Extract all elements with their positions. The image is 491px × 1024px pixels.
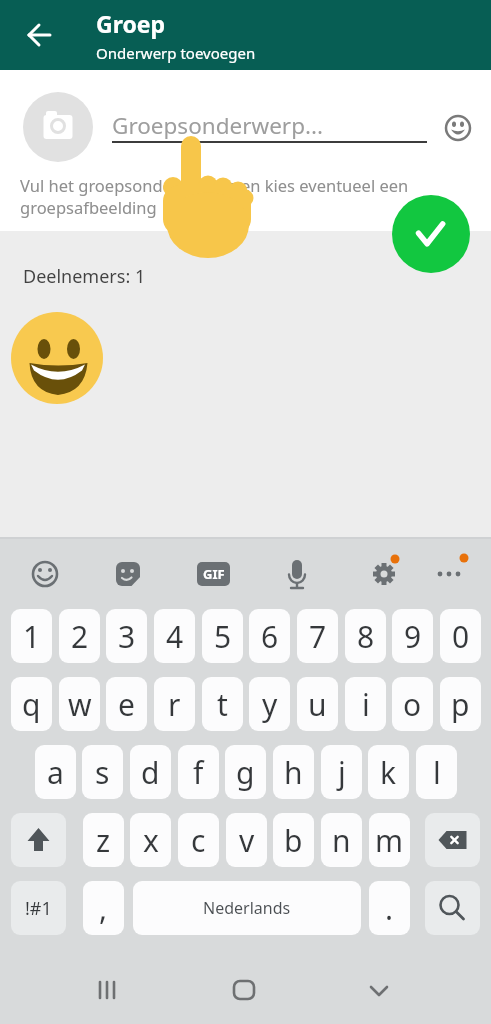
button[interactable] <box>443 113 473 143</box>
button[interactable] <box>11 813 66 867</box>
staticText: q <box>22 684 41 725</box>
staticText: s <box>95 752 110 793</box>
staticText: o <box>403 684 422 725</box>
staticText: n <box>332 820 351 861</box>
staticText: g <box>236 752 255 793</box>
button[interactable]: j <box>321 745 362 799</box>
staticText: . <box>385 888 394 929</box>
staticText: Groepsonderwerp... <box>112 110 324 141</box>
staticText: 1 <box>23 616 41 657</box>
staticText: z <box>96 820 111 861</box>
staticText: b <box>284 820 303 861</box>
staticText: w <box>68 684 92 725</box>
staticText: y <box>262 684 278 725</box>
staticText: 8 <box>357 616 375 657</box>
staticText: t <box>217 684 228 725</box>
button[interactable]: l <box>416 745 457 799</box>
button[interactable]: q <box>11 677 52 731</box>
button[interactable]: c <box>178 813 219 867</box>
button[interactable]: a <box>35 745 76 799</box>
staticText: Vul het groepsonderwerp in en kies event… <box>20 174 409 196</box>
button[interactable]: e <box>106 677 147 731</box>
button[interactable]: , <box>83 881 124 935</box>
staticText: f <box>193 752 204 793</box>
staticText: e <box>118 684 135 725</box>
button[interactable]: 4 <box>154 609 195 663</box>
button[interactable]: g <box>225 745 266 799</box>
staticText: d <box>141 752 160 793</box>
button[interactable]: 6 <box>249 609 290 663</box>
button[interactable]: k <box>368 745 409 799</box>
button[interactable] <box>425 881 480 935</box>
button[interactable]: t <box>202 677 243 731</box>
staticText: 3 <box>118 616 136 657</box>
staticText: groepsafbeelding <box>20 196 157 218</box>
button[interactable]: v <box>226 813 267 867</box>
button[interactable]: y <box>249 677 290 731</box>
staticText: a <box>47 752 64 793</box>
button[interactable]: s <box>82 745 123 799</box>
staticText: 2 <box>71 616 89 657</box>
staticText: 0 <box>452 616 470 657</box>
staticText: Nederlands <box>203 897 291 919</box>
button[interactable]: d <box>130 745 171 799</box>
button[interactable]: 9 <box>392 609 433 663</box>
button[interactable]: . <box>369 881 410 935</box>
staticText: 6 <box>261 616 279 657</box>
button[interactable]: Nederlands <box>133 881 361 935</box>
button[interactable]: z <box>83 813 124 867</box>
staticText: Groep <box>96 8 166 39</box>
staticText: j <box>338 752 346 793</box>
staticText: !#1 <box>25 896 52 921</box>
staticText: GIF <box>203 565 225 583</box>
staticText: 9 <box>404 616 422 657</box>
staticText: u <box>308 684 327 725</box>
staticText: x <box>143 820 159 861</box>
button[interactable]: b <box>273 813 314 867</box>
button[interactable]: 7 <box>297 609 338 663</box>
button[interactable] <box>23 92 93 162</box>
staticText: m <box>375 820 404 861</box>
button[interactable]: i <box>345 677 386 731</box>
button[interactable]: 3 <box>106 609 147 663</box>
button[interactable] <box>425 813 480 867</box>
staticText: Deelnemers: 1 <box>23 264 146 289</box>
button[interactable]: w <box>59 677 100 731</box>
button[interactable] <box>392 195 470 273</box>
button[interactable]: 1 <box>11 609 52 663</box>
button[interactable]: p <box>440 677 481 731</box>
staticText: 4 <box>166 616 184 657</box>
button[interactable]: 2 <box>59 609 100 663</box>
button[interactable]: u <box>297 677 338 731</box>
button[interactable]: n <box>321 813 362 867</box>
button[interactable]: f <box>178 745 219 799</box>
button[interactable]: 8 <box>345 609 386 663</box>
staticText: h <box>284 752 303 793</box>
staticText: 7 <box>309 616 327 657</box>
staticText: v <box>239 820 255 861</box>
staticText: l <box>433 752 441 793</box>
button[interactable]: 5 <box>202 609 243 663</box>
button[interactable]: o <box>392 677 433 731</box>
button[interactable]: !#1 <box>11 881 66 935</box>
staticText: Onderwerp toevoegen <box>96 43 256 63</box>
button[interactable]: h <box>273 745 314 799</box>
staticText: k <box>380 752 397 793</box>
staticText: c <box>191 820 206 861</box>
button[interactable]: x <box>130 813 171 867</box>
button[interactable]: m <box>369 813 410 867</box>
staticText: , <box>99 888 108 929</box>
button[interactable] <box>18 14 60 56</box>
staticText: 5 <box>214 616 232 657</box>
button[interactable]: r <box>154 677 195 731</box>
staticText: p <box>451 684 470 725</box>
staticText: r <box>168 684 181 725</box>
staticText: i <box>362 684 370 725</box>
button[interactable]: 0 <box>440 609 481 663</box>
